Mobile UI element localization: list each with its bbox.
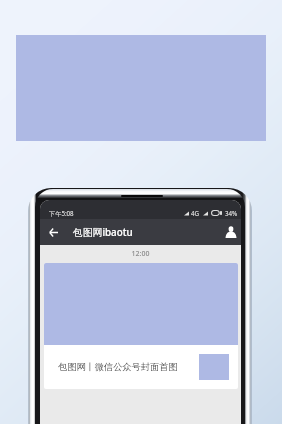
- staticText: 34%: [225, 209, 238, 217]
- staticText: 包图网ibaotu: [73, 226, 133, 239]
- button[interactable]: Back: [40, 219, 66, 245]
- button[interactable]: 包图网丨微信公众号封面首图: [44, 263, 238, 389]
- staticText: 包图网丨微信公众号封面首图: [58, 361, 178, 373]
- button[interactable]: Profile: [220, 219, 241, 245]
- staticText: 4G: [191, 209, 200, 217]
- staticText: 12:00: [40, 249, 241, 259]
- staticText: 下午5:08: [49, 209, 74, 217]
